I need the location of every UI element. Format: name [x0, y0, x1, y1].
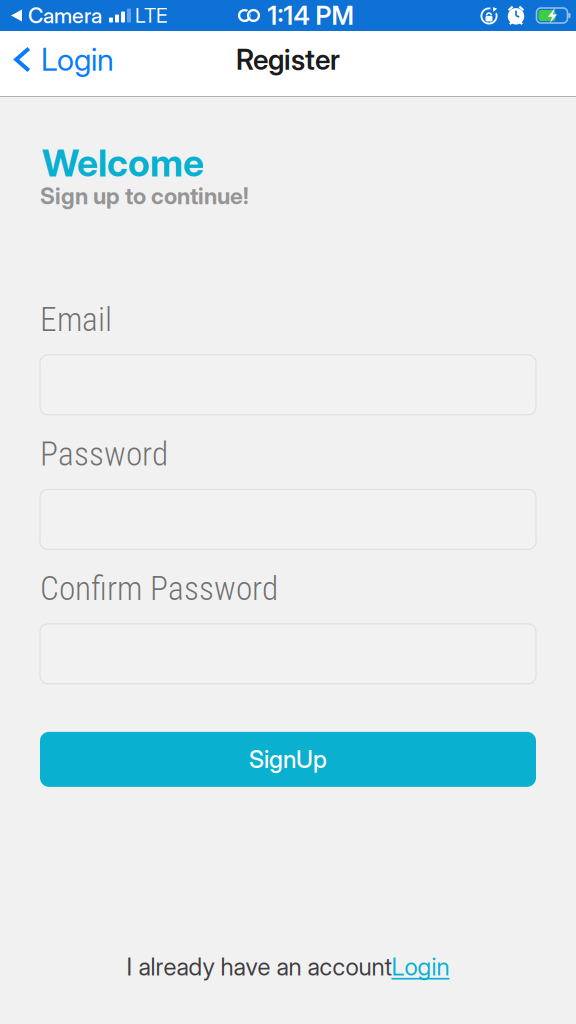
- staticText: LTE: [135, 1, 168, 30]
- staticText: Camera: [28, 0, 102, 31]
- staticText: SignUp: [249, 742, 327, 777]
- staticText: Password: [40, 431, 168, 477]
- staticText: Welcome: [42, 136, 204, 190]
- staticText: Login: [391, 949, 449, 984]
- staticText: I already have an account: [126, 949, 391, 984]
- staticText: Login: [41, 37, 114, 82]
- button[interactable]: Login: [391, 949, 449, 984]
- button[interactable]: Back to Camera: [0, 0, 102, 31]
- staticText: Confirm Password: [40, 565, 278, 612]
- button[interactable]: SignUp: [40, 732, 536, 787]
- staticText: Email: [40, 296, 112, 343]
- button[interactable]: Back to Login: [0, 41, 114, 86]
- staticText: Sign up to continue!: [40, 180, 249, 212]
- staticText: 1:14 PM: [267, 0, 353, 34]
- staticText: Register: [236, 39, 340, 80]
